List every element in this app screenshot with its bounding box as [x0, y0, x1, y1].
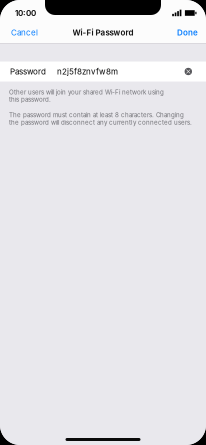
staticText: Password [10, 67, 46, 76]
staticText: 10:00 [15, 8, 36, 18]
staticText: Done [177, 28, 198, 37]
staticText: n2j5f8znvfw8m [57, 67, 118, 76]
button[interactable]: Cancel [0, 22, 49, 43]
staticText: Wi-Fi Password [72, 28, 133, 37]
button[interactable]: Clear text [182, 65, 195, 78]
button[interactable]: Done [169, 22, 206, 43]
staticText: Other users will join your shared Wi-Fi … [9, 88, 164, 103]
staticText: The password must contain at least 8 cha… [9, 111, 192, 126]
staticText: Cancel [11, 28, 38, 37]
